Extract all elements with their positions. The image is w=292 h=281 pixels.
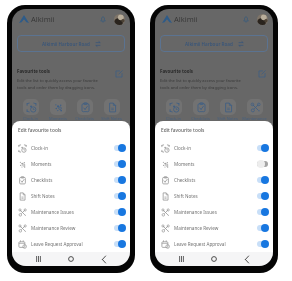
staticText: Shift Notes [101,116,122,121]
button[interactable]: On [114,192,125,200]
button[interactable]: Shift Notes [12,188,130,204]
button[interactable]: On [257,224,268,232]
button[interactable]: Maintenance Review [155,220,273,236]
button[interactable]: Shift Notes [98,99,125,121]
staticText: Alkimii Harbour Road [185,41,233,47]
button[interactable]: Maintenance Issues [155,204,273,220]
staticText: Moments [49,116,67,121]
button[interactable]: Alkimii Harbour Road [17,35,125,52]
staticText: Alkimii [31,14,55,24]
button[interactable]: Alkimii Harbour Road [160,35,268,52]
staticText: Alkimii [174,14,198,24]
button[interactable]: Notifications [98,14,108,24]
button[interactable]: Maintenance Issues [12,204,130,220]
staticText: Clock-in [31,145,49,151]
button[interactable]: Off [257,160,268,168]
button[interactable]: On [257,208,268,216]
button[interactable]: On [257,192,268,200]
staticText: Checklists [174,177,196,183]
staticText: Maintenance Issues [31,209,74,215]
button[interactable]: Maintenance Issues [241,99,268,126]
staticText: Maintenance Issues [241,116,268,126]
button[interactable]: On [114,160,125,168]
button[interactable]: Clock-in [12,140,130,156]
button[interactable]: Checklists [187,99,214,121]
button[interactable]: Clock-in [155,140,273,156]
staticText: Clock-in [166,116,181,121]
staticText: Favourite tools [17,68,50,74]
button[interactable]: Moments [44,99,71,121]
button[interactable]: Shift Notes [155,188,273,204]
staticText: Shift Notes [217,116,238,121]
button[interactable]: On [257,144,268,152]
staticText: Edit favourite tools [161,127,205,134]
button[interactable]: Recents [174,252,188,266]
button[interactable]: Profile [114,14,125,25]
staticText: Clock-in [23,116,38,121]
button[interactable]: Home [64,252,78,266]
button[interactable]: Home [207,252,221,266]
button[interactable]: Moments [155,156,273,172]
button[interactable]: On [114,224,125,232]
button[interactable]: On [114,144,125,152]
button[interactable]: Leave Request Approval [12,236,130,252]
button[interactable]: Checklists [71,99,98,121]
button[interactable]: Notifications [241,14,251,24]
staticText: Checklists [31,177,53,183]
button[interactable]: On [257,240,268,248]
staticText: Maintenance Review [174,225,219,231]
staticText: Alkimii Harbour Road [42,41,90,47]
button[interactable]: Recents [31,252,45,266]
button[interactable]: Edit favourite tools [113,68,125,80]
button[interactable]: Back [97,252,111,266]
staticText: Shift Notes [31,193,55,199]
button[interactable]: Maintenance Review [12,220,130,236]
button[interactable]: Profile [257,14,268,25]
button[interactable]: On [114,240,125,248]
staticText: Leave Request Approval [174,241,226,247]
button[interactable]: On [257,176,268,184]
button[interactable]: Leave Request Approval [155,236,273,252]
staticText: Maintenance Review [31,225,76,231]
button[interactable]: Clock-in [17,99,44,121]
staticText: Leave Request Approval [31,241,83,247]
button[interactable]: On [114,208,125,216]
button[interactable]: Moments [12,156,130,172]
button[interactable]: Edit favourite tools [256,68,268,80]
staticText: Favourite tools [160,68,193,74]
staticText: Moments [31,161,52,167]
button[interactable]: Back [240,252,254,266]
button[interactable]: On [114,176,125,184]
staticText: Checklists [75,116,94,121]
staticText: Shift Notes [174,193,198,199]
staticText: Clock-in [174,145,192,151]
staticText: Checklists [191,116,210,121]
staticText: Edit favourite tools [18,127,62,134]
staticText: Edit the list to quickly access your fav… [160,78,241,90]
button[interactable]: Clock-in [160,99,187,121]
staticText: Maintenance Issues [174,209,217,215]
button[interactable]: Checklists [12,172,130,188]
staticText: Moments [174,161,195,167]
button[interactable]: Shift Notes [214,99,241,121]
staticText: Edit the list to quickly access your fav… [17,78,98,90]
button[interactable]: Checklists [155,172,273,188]
